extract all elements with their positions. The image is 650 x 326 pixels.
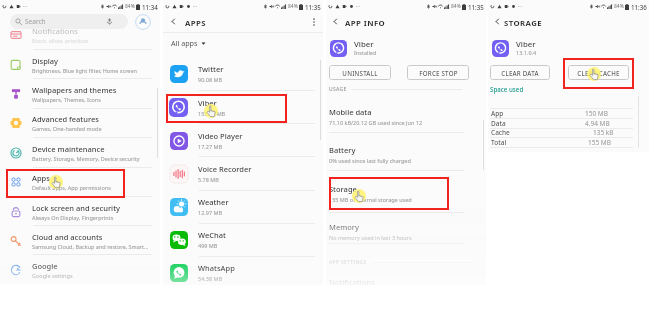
staticText: USAGE — [329, 86, 347, 93]
staticText: Installed — [354, 49, 377, 56]
staticText: All apps — [171, 38, 198, 48]
staticText: Advanced features — [32, 114, 99, 124]
staticText: APPS — [185, 18, 206, 29]
staticText: APP INFO — [345, 18, 386, 29]
button[interactable]: Weather — [169, 190, 319, 223]
staticText: Lock screen and security — [32, 203, 120, 213]
staticText: 155 MB of internal storage used — [329, 196, 412, 203]
staticText: Twitter — [198, 64, 224, 74]
staticText: 155 MB — [588, 138, 611, 147]
staticText: Total — [491, 138, 507, 147]
staticText: Block, allow, prioritize — [32, 37, 89, 44]
staticText: Battery — [329, 145, 356, 155]
staticText: Data — [491, 119, 506, 128]
button[interactable]: Voice Recorder — [169, 157, 319, 190]
staticText: 17.27 MB — [198, 143, 223, 150]
staticText: ··· — [193, 3, 198, 10]
staticText: Cache — [491, 128, 510, 137]
button[interactable]: Advanced features — [6, 108, 154, 137]
staticText: 11:36 — [631, 3, 647, 10]
staticText: Viber — [516, 39, 536, 50]
staticText: Apps — [32, 173, 50, 183]
staticText: FORCE STOP — [419, 69, 458, 77]
button[interactable]: Search — [10, 14, 128, 29]
button[interactable]: Twitter — [169, 57, 319, 90]
staticText: Memory — [329, 222, 360, 232]
button[interactable]: Account — [135, 14, 151, 30]
staticText: Viber — [198, 98, 217, 108]
staticText: Space used — [490, 85, 524, 93]
staticText: No memory used in last 3 hours — [329, 234, 412, 241]
staticText: Wallpapers, Themes, Icons — [32, 96, 101, 103]
button[interactable]: Display — [6, 50, 154, 79]
button[interactable]: UNINSTALL — [329, 65, 391, 80]
staticText: 84% — [125, 3, 135, 10]
staticText: 84% — [614, 3, 624, 10]
staticText: 11:34 — [142, 3, 158, 10]
staticText: 135 kB — [593, 128, 614, 137]
staticText: App — [491, 109, 504, 118]
staticText: Notifications — [329, 277, 375, 285]
button[interactable]: Memory — [329, 222, 469, 241]
staticText: 13.1.0.4 — [516, 49, 537, 56]
button[interactable]: Back — [168, 16, 179, 27]
staticText: Samsung Cloud, Backup and restore, Smart… — [32, 243, 149, 250]
staticText: APP SETTINGS — [329, 259, 367, 266]
button[interactable]: Mobile data — [329, 107, 469, 126]
button[interactable]: WeChat — [169, 223, 319, 256]
staticText: Storage — [329, 184, 357, 194]
staticText: Viber — [354, 39, 374, 50]
button[interactable]: Wallpapers and themes — [6, 79, 154, 108]
staticText: Device maintenance — [32, 144, 105, 154]
staticText: 54.38 MB — [198, 275, 223, 282]
staticText: ··· — [23, 3, 28, 10]
button[interactable]: Google — [6, 255, 154, 284]
staticText: 499 MB — [198, 242, 218, 249]
staticText: Default apps, App permissions — [32, 184, 111, 191]
staticText: Voice Recorder — [198, 164, 252, 174]
staticText: Always On Display, Fingerprints — [32, 214, 114, 221]
staticText: Cloud and accounts — [32, 232, 103, 242]
staticText: 11:35 — [305, 3, 321, 10]
button[interactable]: All apps — [171, 36, 206, 50]
staticText: CLEAR DATA — [501, 69, 539, 77]
staticText: 4.94 MB — [585, 119, 610, 128]
button[interactable]: Back — [492, 16, 503, 27]
button[interactable]: Apps — [6, 167, 154, 196]
button[interactable]: Storage — [329, 184, 469, 203]
staticText: Weather — [198, 197, 229, 207]
staticText: ··· — [356, 3, 361, 10]
button[interactable]: Device maintenance — [6, 138, 154, 167]
button[interactable]: CLEAR DATA — [490, 65, 550, 80]
button[interactable]: Viber — [169, 91, 319, 124]
staticText: CLEAR CACHE — [577, 69, 620, 77]
button[interactable]: Video Player — [169, 124, 319, 157]
button[interactable]: Battery — [329, 145, 469, 164]
staticText: STORAGE — [504, 18, 542, 29]
staticText: Display — [32, 56, 59, 66]
button[interactable]: WhatsApp — [169, 256, 319, 285]
staticText: UNINSTALL — [342, 69, 378, 77]
button[interactable]: FORCE STOP — [407, 65, 469, 80]
staticText: WhatsApp — [198, 263, 235, 273]
staticText: 150 MB — [585, 109, 608, 118]
button[interactable]: Lock screen and security — [6, 197, 154, 226]
staticText: Notifications — [32, 26, 78, 36]
staticText: 71.10 kB/20.12 GB used since Jun 12 — [329, 119, 423, 126]
button[interactable]: CLEAR CACHE — [568, 65, 629, 80]
staticText: 11:35 — [468, 3, 484, 10]
button[interactable]: More options — [308, 16, 319, 27]
button[interactable]: Cloud and accounts — [6, 226, 154, 255]
button[interactable]: Notifications — [6, 20, 154, 49]
staticText: 12.97 MB — [198, 209, 223, 216]
staticText: 155.00 MB — [198, 110, 226, 117]
staticText: 84% — [451, 3, 461, 10]
staticText: Games, One-handed mode — [32, 125, 102, 132]
staticText: Brightness, Blue light filter, Home scre… — [32, 67, 137, 74]
staticText: WeChat — [198, 230, 226, 240]
staticText: 0% used since last fully charged — [329, 157, 411, 164]
button[interactable]: Back — [330, 16, 341, 27]
staticText: Battery, Storage, Memory, Device securit… — [32, 155, 140, 162]
staticText: Mobile data — [329, 107, 372, 117]
staticText: Wallpapers and themes — [32, 85, 117, 95]
